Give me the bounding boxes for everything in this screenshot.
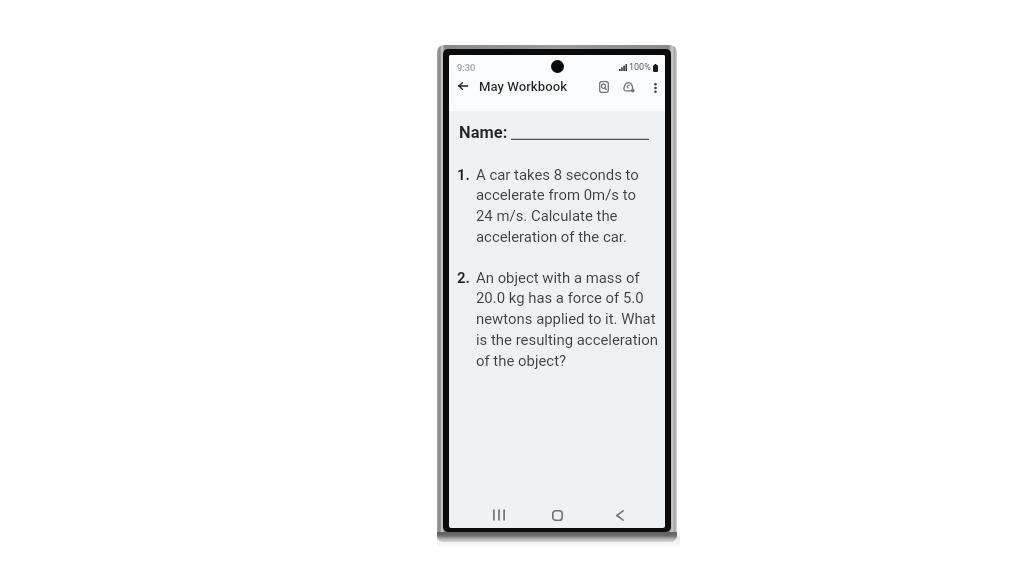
button[interactable]: Recent apps [486, 502, 512, 528]
button[interactable]: Home [544, 502, 570, 528]
button[interactable]: Back [607, 502, 633, 528]
button[interactable]: Find in document [592, 75, 616, 99]
staticText: Name: [459, 123, 508, 142]
button[interactable]: More options [643, 76, 665, 100]
staticText: 1. [457, 166, 476, 183]
staticText: A car takes 8 seconds to accelerate from… [476, 166, 639, 246]
staticText: 2. [457, 269, 476, 286]
staticText: 100% [629, 62, 651, 73]
button[interactable]: Back [451, 74, 475, 98]
button[interactable]: Share [617, 75, 641, 99]
staticText: May Workbook [479, 79, 568, 94]
staticText: An object with a mass of 20.0 kg has a f… [476, 269, 658, 370]
staticText: 9:30 [457, 62, 476, 73]
